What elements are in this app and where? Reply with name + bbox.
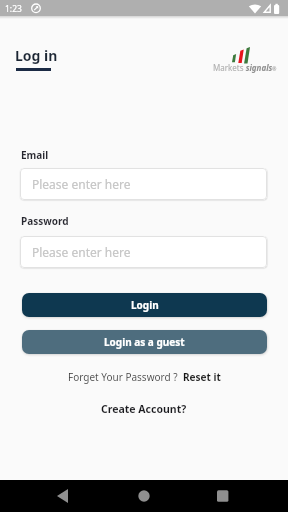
button[interactable]: Please enter here xyxy=(20,236,267,268)
staticText: Log in xyxy=(15,46,58,65)
button[interactable]: Create Account? xyxy=(101,402,187,416)
staticText: Password xyxy=(21,214,69,228)
button[interactable]: Login xyxy=(22,293,267,317)
button[interactable]: Please enter here xyxy=(20,168,267,200)
button[interactable] xyxy=(192,480,288,512)
staticText: Forget Your Password ? xyxy=(68,370,178,384)
staticText: Login as a guest xyxy=(104,335,185,349)
staticText: Please enter here xyxy=(32,244,131,260)
button[interactable]: Reset it xyxy=(183,370,221,384)
button[interactable] xyxy=(0,480,96,512)
staticText: 1:23 xyxy=(5,3,22,15)
staticText: Markets signals® xyxy=(213,62,277,73)
staticText: Email xyxy=(21,148,49,162)
staticText: Please enter here xyxy=(32,176,131,192)
button[interactable]: Login as a guest xyxy=(22,330,267,354)
button[interactable] xyxy=(96,480,192,512)
staticText: Login xyxy=(131,298,159,312)
